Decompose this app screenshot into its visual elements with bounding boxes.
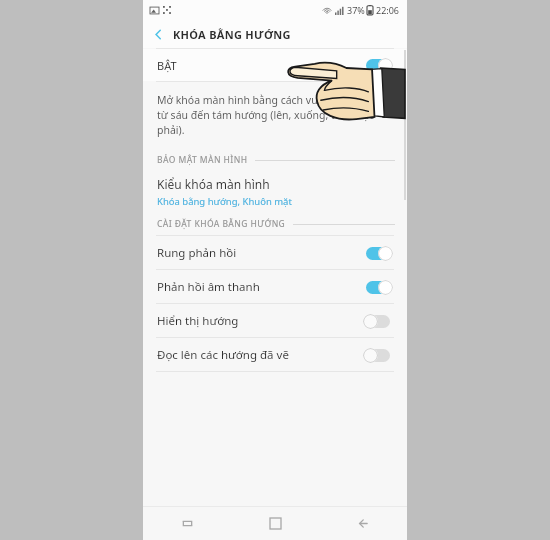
staticText: Hiển thị hướng xyxy=(157,313,239,329)
button[interactable]: Back xyxy=(143,20,173,48)
staticText: Kiểu khóa màn hình xyxy=(157,176,270,192)
staticText: CÀI ĐẶT KHÓA BẰNG HƯỚNG xyxy=(157,218,286,230)
staticText: Mở khóa màn hình bằng cách vuốt theo chu… xyxy=(157,93,391,137)
staticText: 37% xyxy=(347,4,365,16)
button[interactable]: Hiển thị hướng xyxy=(143,304,407,337)
staticText: BẢO MẬT MÀN HÌNH xyxy=(157,154,248,166)
staticText: Khóa bằng hướng, Khuôn mặt xyxy=(157,195,292,208)
button[interactable]: Đọc lên các hướng đã vẽ xyxy=(143,338,407,371)
staticText: Rung phản hồi xyxy=(157,245,237,261)
button[interactable]: Rung phản hồi xyxy=(143,236,407,269)
staticText: Phản hồi âm thanh xyxy=(157,279,260,295)
button[interactable]: Kiểu khóa màn hình xyxy=(143,171,407,213)
button[interactable]: Back xyxy=(319,507,407,540)
button[interactable]: Phản hồi âm thanh xyxy=(143,270,407,303)
button[interactable]: BẬT xyxy=(143,49,407,81)
staticText: Đọc lên các hướng đã vẽ xyxy=(157,347,289,363)
staticText: BẬT xyxy=(157,58,177,73)
button[interactable]: Recents xyxy=(143,507,231,540)
staticText: 22:06 xyxy=(376,4,400,16)
button[interactable]: Home xyxy=(231,507,319,540)
staticText: KHÓA BẰNG HƯỚNG xyxy=(173,27,291,42)
